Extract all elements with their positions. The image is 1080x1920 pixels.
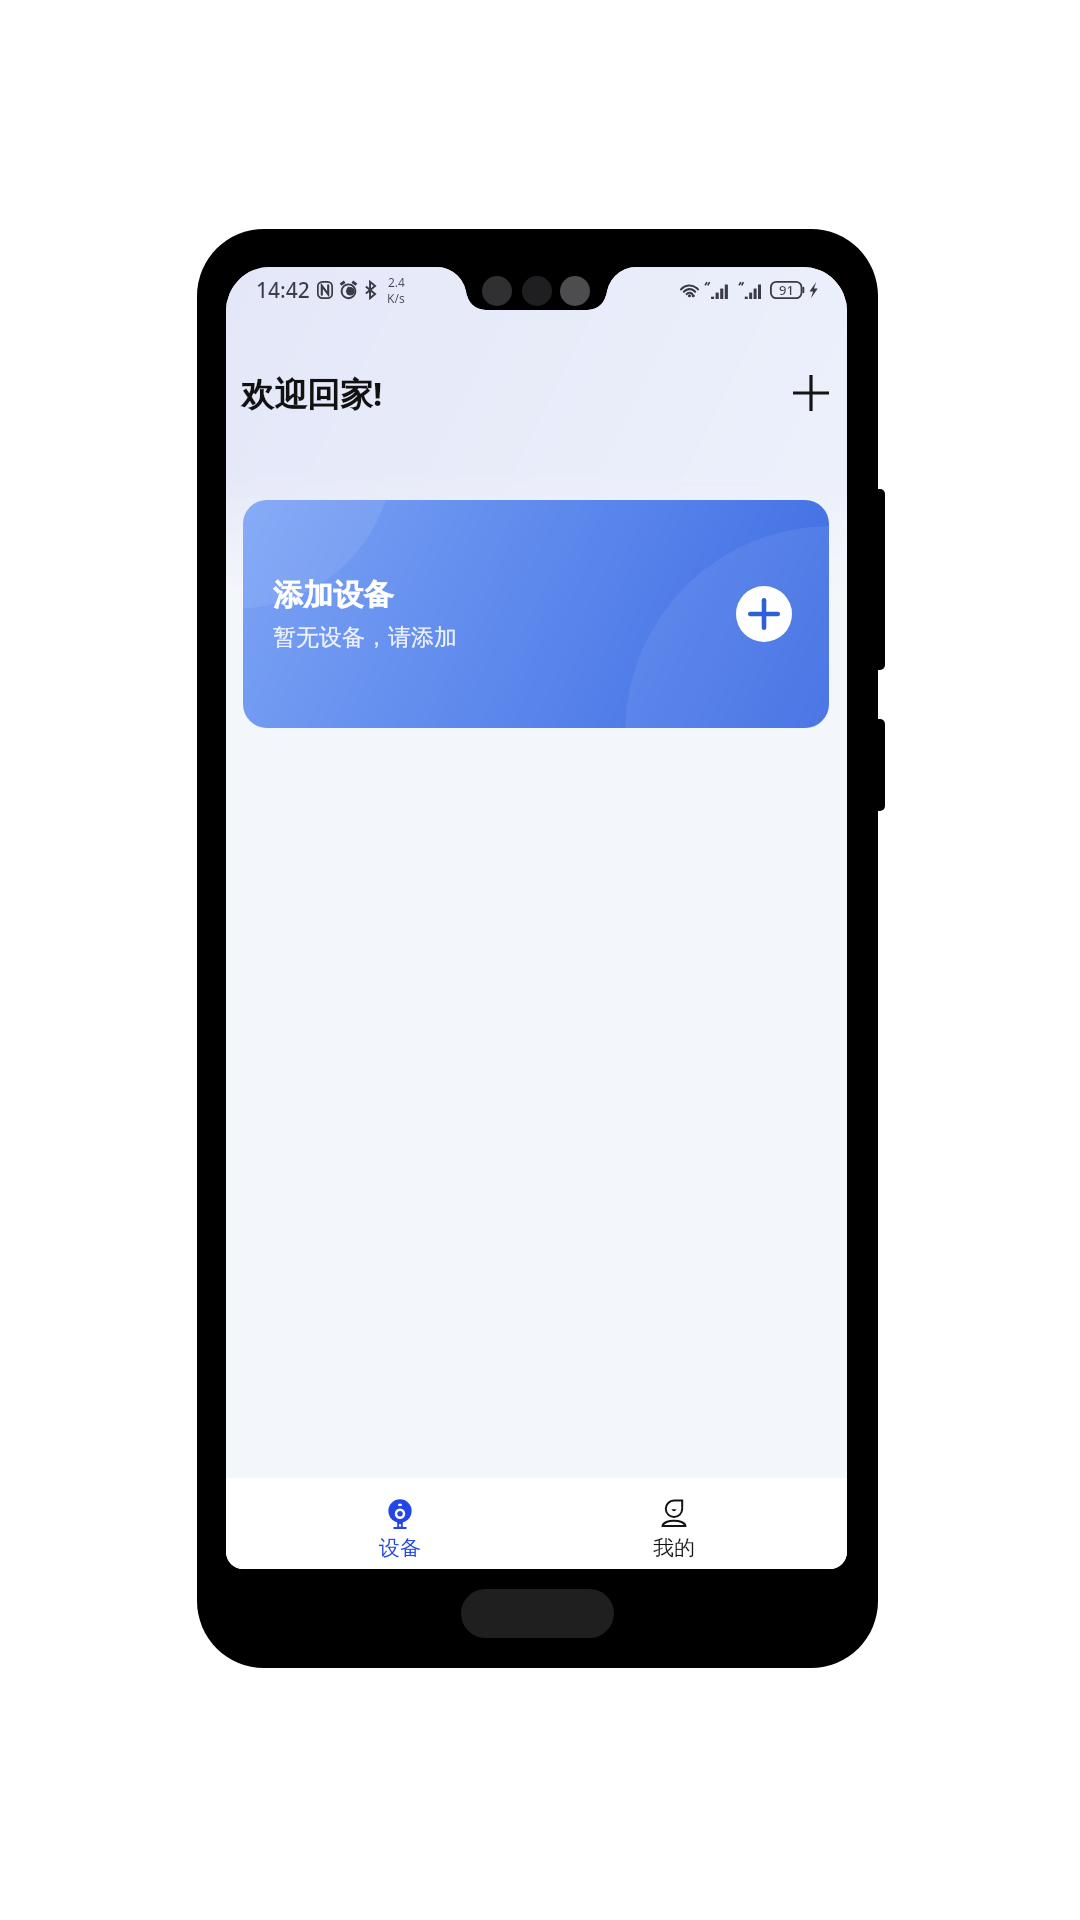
staticText: 设备: [379, 1535, 421, 1561]
button[interactable]: 添加设备: [243, 500, 829, 728]
staticText: 2.4: [388, 274, 405, 290]
button[interactable]: Add device: [736, 586, 792, 642]
staticText: 添加设备: [273, 576, 393, 614]
staticText: 我的: [653, 1535, 695, 1561]
button[interactable]: 设备: [340, 1498, 460, 1561]
staticText: 91: [779, 281, 794, 299]
staticText: K/s: [387, 290, 405, 306]
button[interactable]: 我的: [614, 1498, 734, 1561]
staticText: 暂无设备，请添加: [273, 623, 457, 652]
staticText: 14:42: [256, 276, 310, 305]
button[interactable]: Add device: [783, 365, 839, 421]
staticText: 欢迎回家!: [241, 371, 383, 416]
